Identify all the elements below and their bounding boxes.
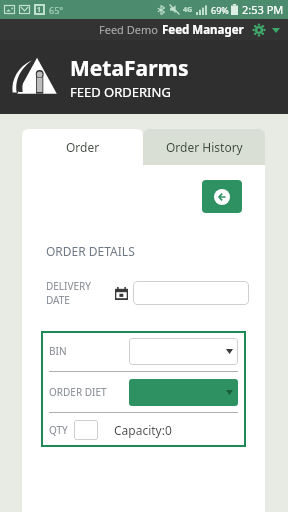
staticText: Order (66, 139, 100, 155)
staticText: 65° (49, 4, 64, 16)
staticText: Order History (166, 139, 243, 155)
staticText: Capacity:0 (114, 422, 172, 438)
staticText: DATE (46, 293, 70, 307)
staticText: ORDER DETAILS (46, 243, 135, 259)
staticText: BIN (49, 344, 129, 358)
staticText: 4G (183, 5, 193, 15)
button[interactable]: Order History (143, 129, 265, 165)
button[interactable]: Back (202, 180, 242, 213)
staticText: QTY (49, 423, 68, 437)
button[interactable]: Settings (251, 22, 267, 38)
button[interactable] (74, 420, 98, 440)
button[interactable]: More options (269, 23, 283, 37)
staticText: Feed Manager (162, 22, 244, 38)
staticText: DELIVERY (46, 279, 91, 293)
staticText: ORDER DIET (49, 385, 129, 399)
button[interactable]: Order (22, 129, 143, 165)
staticText: 1 (37, 5, 42, 15)
button[interactable]: Pick date (114, 286, 128, 300)
staticText: MetaFarms (70, 54, 189, 83)
staticText: Feed Demo (99, 22, 158, 37)
button[interactable] (133, 281, 249, 305)
button[interactable]: Dropdown (129, 338, 238, 365)
button[interactable]: Dropdown (129, 379, 238, 406)
staticText: 69% (211, 4, 229, 16)
staticText: 2:53 PM (242, 2, 284, 17)
staticText: FEED ORDERING (70, 83, 171, 101)
